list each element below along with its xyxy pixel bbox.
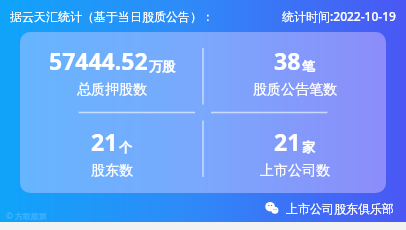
button[interactable]: 57444.52 (20, 32, 203, 112)
button[interactable]: 21 (20, 112, 203, 193)
staticText: 家 (302, 139, 315, 155)
staticText: 笔 (302, 58, 315, 74)
staticText: 21 (91, 126, 118, 157)
staticText: 股质公告笔数 (253, 81, 337, 99)
staticText: 总质押股数 (77, 81, 147, 99)
staticText: 万股 (149, 58, 175, 74)
staticText: 21 (274, 126, 301, 157)
staticText: © 方取股票 (6, 210, 47, 221)
staticText: 上市公司数 (260, 162, 330, 180)
staticText: 38 (274, 45, 301, 76)
staticText: 上市公司股东俱乐部 (286, 201, 394, 216)
staticText: 股东数 (91, 162, 133, 180)
staticText: 据云天汇统计（基于当日股质公告）： (10, 9, 214, 24)
staticText: 57444.52 (49, 45, 148, 76)
staticText: 统计时间:2022-10-19 (282, 8, 396, 24)
staticText: 个 (119, 139, 132, 155)
button[interactable]: 21 (203, 112, 386, 193)
button[interactable]: 38 (203, 32, 386, 112)
button[interactable]: 上市公司股东俱乐部 (264, 200, 394, 216)
